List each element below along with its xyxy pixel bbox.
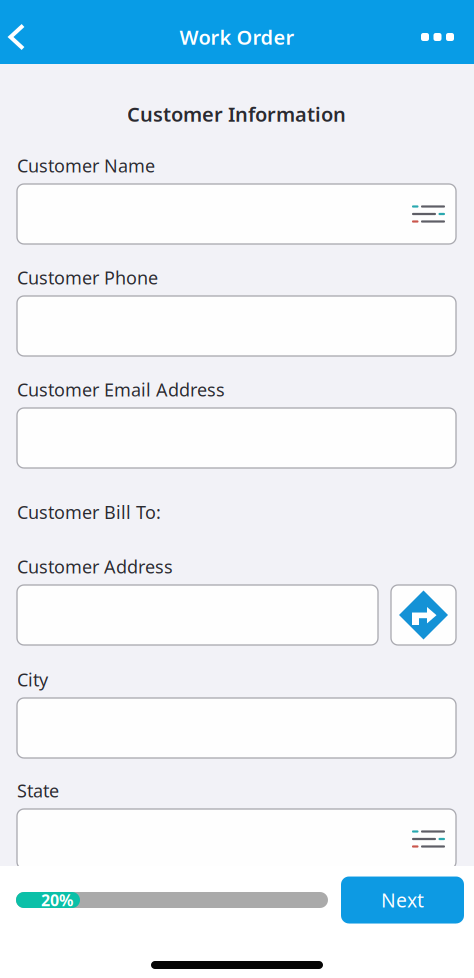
- staticText: Customer Phone: [17, 265, 158, 290]
- button[interactable]: Back: [0, 10, 50, 64]
- staticText: Customer Information: [127, 100, 346, 128]
- staticText: Next: [381, 887, 424, 913]
- staticText: Customer Address: [17, 554, 173, 579]
- button[interactable]: Get directions: [391, 585, 456, 645]
- staticText: 20%: [41, 889, 73, 911]
- staticText: Work Order: [179, 23, 294, 51]
- staticText: Customer Email Address: [17, 377, 225, 402]
- button[interactable]: More options: [414, 10, 474, 64]
- staticText: Customer Bill To:: [17, 500, 161, 524]
- staticText: State: [17, 778, 59, 803]
- button[interactable]: Next: [341, 876, 464, 923]
- staticText: City: [17, 667, 48, 692]
- staticText: Customer Name: [17, 153, 155, 178]
